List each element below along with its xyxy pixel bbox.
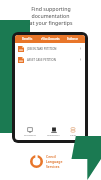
staticText: JOB IN-TAKE PETITION xyxy=(27,47,79,51)
staticText: Interpreters xyxy=(47,134,60,137)
button[interactable]: Benefits xyxy=(21,37,34,41)
staticText: Language xyxy=(46,159,63,164)
button[interactable]: JOB IN-TAKE PETITION xyxy=(15,43,85,54)
button[interactable]: Documents xyxy=(23,127,37,137)
button[interactable]: Evidence xyxy=(66,37,79,41)
staticText: ASSET CASE PETITION xyxy=(27,58,79,62)
staticText: Cases xyxy=(70,134,76,137)
staticText: Documents xyxy=(24,134,36,137)
button[interactable]: ASSET CASE PETITION xyxy=(15,54,85,65)
staticText: Evidence xyxy=(67,37,78,41)
staticText: at your fingertips xyxy=(29,19,73,26)
staticText: eVisa Accounts xyxy=(41,37,60,41)
staticText: Benefits xyxy=(22,37,33,41)
button[interactable]: Cases xyxy=(69,127,77,137)
staticText: documentation xyxy=(31,12,70,19)
staticText: Services xyxy=(46,164,60,169)
button[interactable]: Cencil xyxy=(28,152,65,171)
button[interactable]: Interpreters xyxy=(46,127,61,137)
button[interactable]: eVisa Accounts xyxy=(40,37,61,41)
staticText: Find supporting xyxy=(31,5,71,12)
staticText: Cencil xyxy=(46,154,56,159)
